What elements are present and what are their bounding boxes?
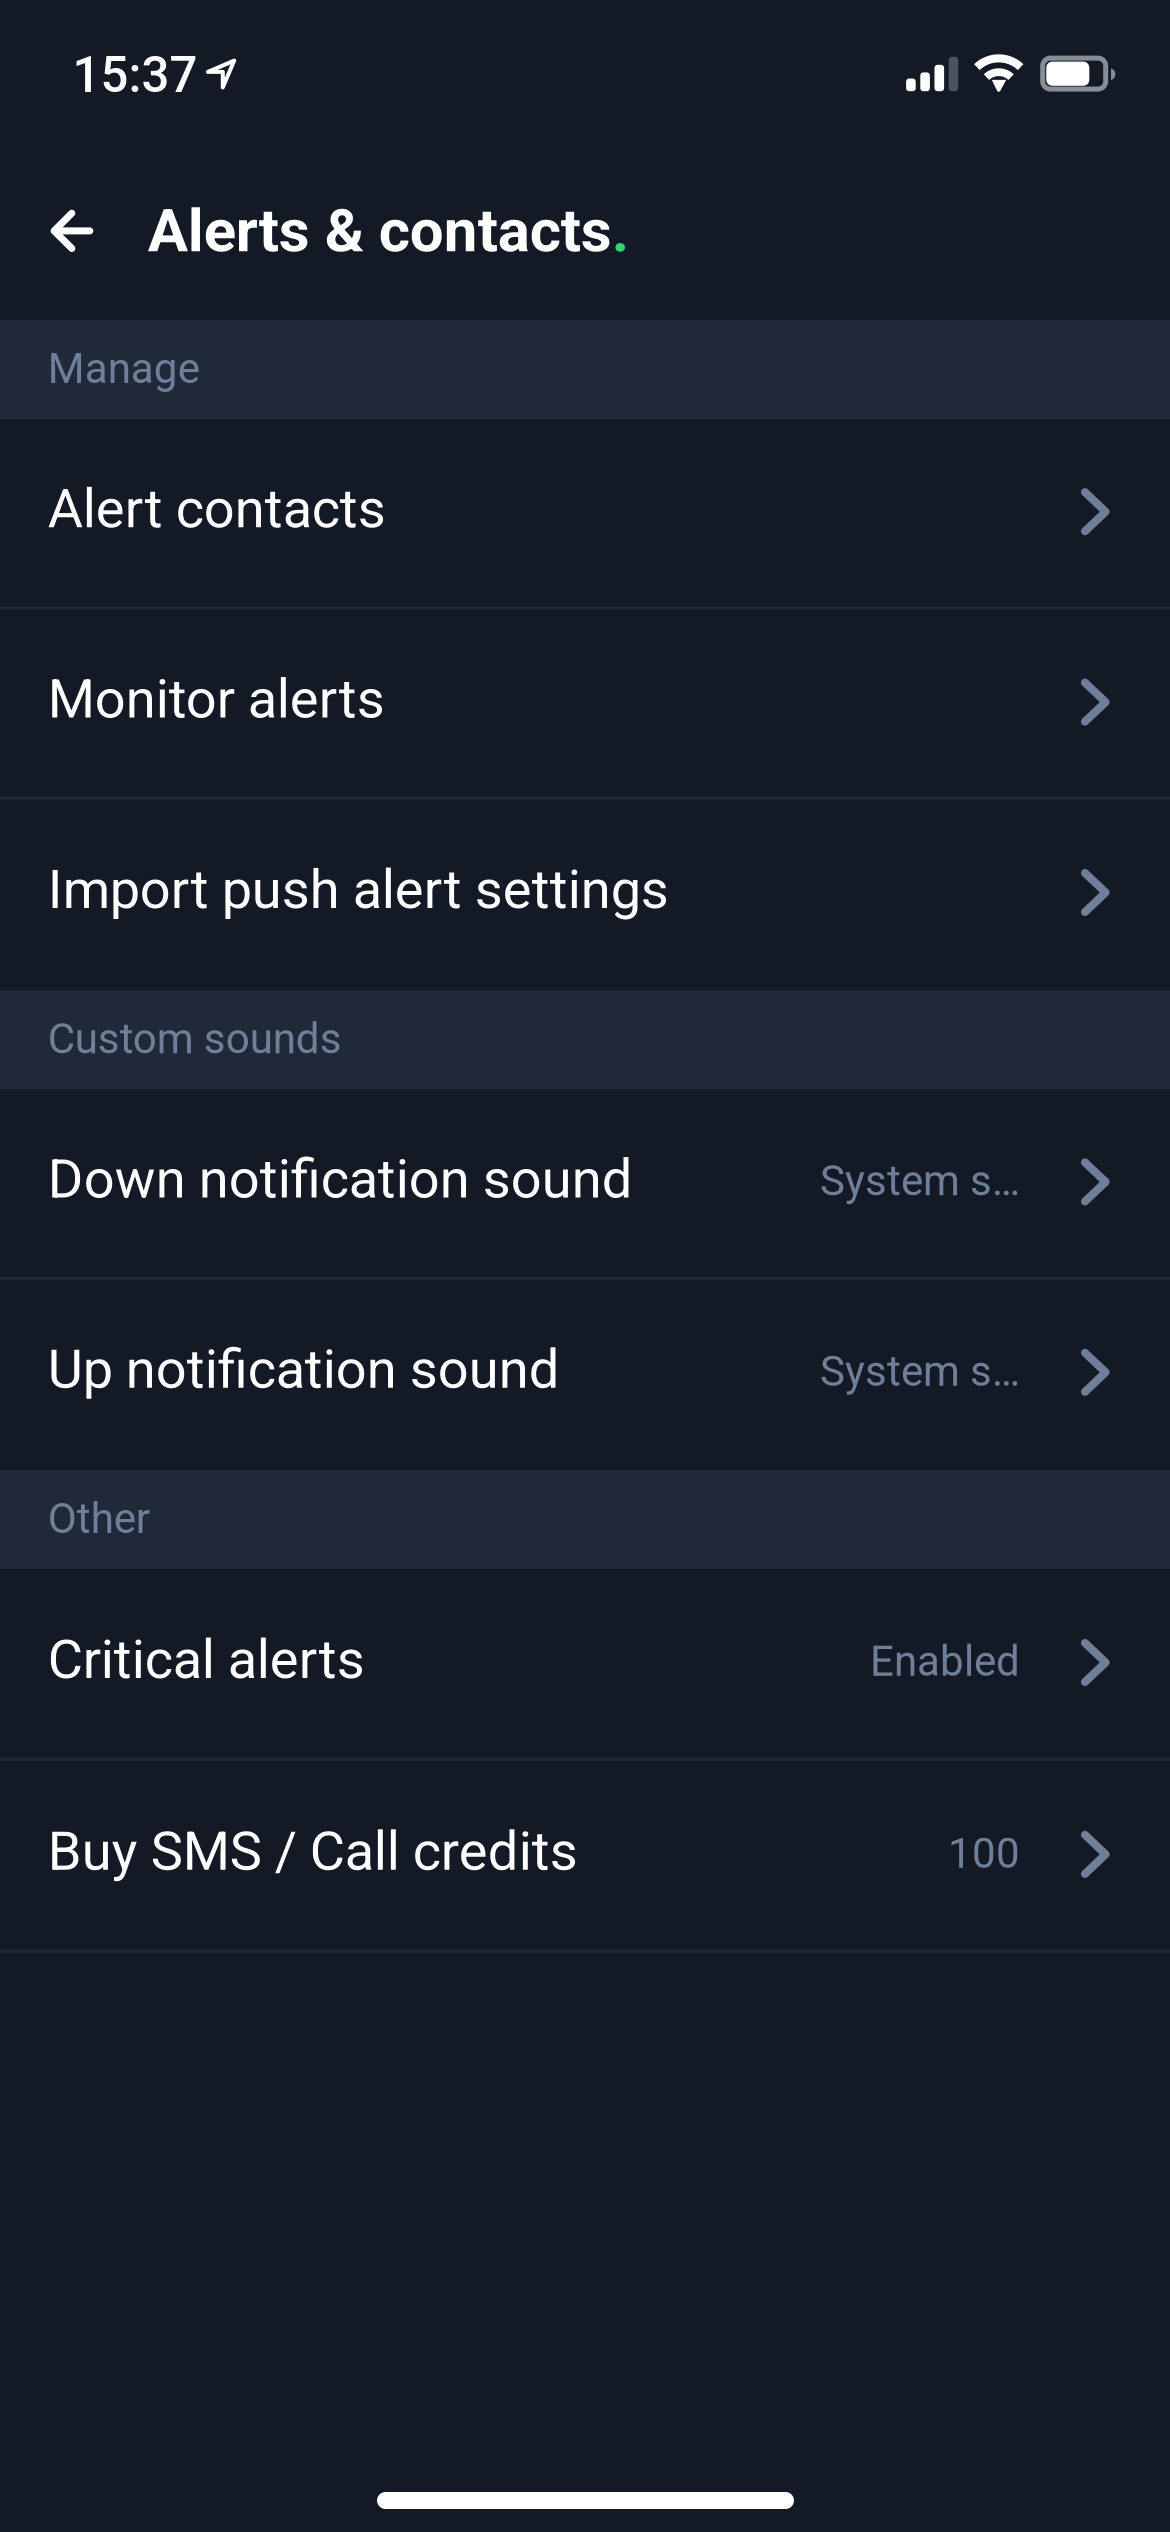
staticText: 100 <box>948 1829 1020 1878</box>
staticText: Buy SMS / Call credits <box>48 1820 578 1883</box>
button[interactable]: Down notification sound <box>0 1089 1170 1280</box>
button[interactable]: Alert contacts <box>0 419 1170 609</box>
staticText: 15:37 <box>73 47 198 104</box>
staticText: Enabled <box>870 1637 1020 1686</box>
button[interactable]: Monitor alerts <box>0 609 1170 800</box>
staticText: System s… <box>820 1156 1020 1205</box>
staticText: Manage <box>48 344 200 393</box>
staticText: Alert contacts <box>48 477 386 540</box>
staticText: Monitor alerts <box>48 667 385 731</box>
staticText: Alerts & contacts <box>148 196 612 266</box>
staticText: Other <box>48 1494 150 1543</box>
button[interactable]: Up notification sound <box>0 1280 1170 1470</box>
button[interactable]: Import push alert settings <box>0 800 1170 990</box>
staticText: Import push alert settings <box>48 858 669 921</box>
staticText: Down notification sound <box>48 1147 633 1211</box>
button[interactable]: Back <box>51 210 93 252</box>
staticText: Critical alerts <box>48 1628 365 1691</box>
staticText: Up notification sound <box>48 1338 560 1401</box>
staticText: System s… <box>820 1347 1020 1396</box>
button[interactable]: Critical alerts <box>0 1569 1170 1761</box>
button[interactable]: Buy SMS / Call credits <box>0 1761 1170 1953</box>
staticText: . <box>612 196 629 266</box>
staticText: Custom sounds <box>48 1014 342 1063</box>
